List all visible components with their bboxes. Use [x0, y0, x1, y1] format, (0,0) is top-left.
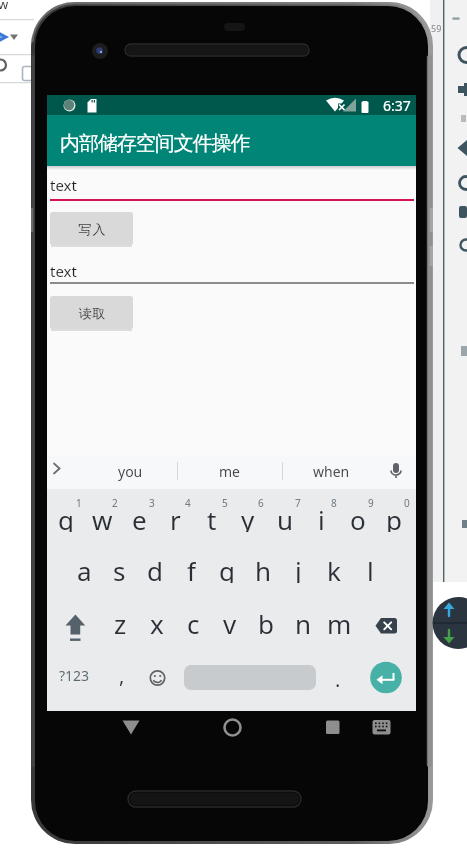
- staticText: .: [335, 666, 341, 692]
- staticText: g: [219, 553, 235, 583]
- staticText: l: [367, 553, 374, 583]
- staticText: t: [207, 502, 217, 532]
- staticText: 1: [76, 496, 82, 507]
- staticText: e: [132, 502, 147, 532]
- staticText: c: [187, 606, 200, 636]
- staticText: 读取: [78, 305, 106, 321]
- staticText: m: [327, 606, 352, 636]
- staticText: n: [295, 606, 312, 636]
- staticText: 7: [295, 496, 301, 507]
- staticText: u: [277, 502, 294, 532]
- staticText: 9: [368, 496, 374, 507]
- staticText: 内部储存空间文件操作: [60, 131, 250, 156]
- staticText: s: [113, 553, 126, 583]
- staticText: you: [118, 462, 143, 481]
- staticText: 3: [149, 496, 155, 507]
- staticText: 8: [331, 496, 337, 507]
- staticText: me: [219, 462, 240, 481]
- staticText: 6:37: [383, 96, 411, 115]
- staticText: d: [147, 553, 163, 583]
- staticText: ,: [119, 662, 125, 688]
- staticText: z: [114, 606, 127, 636]
- staticText: 0: [404, 496, 410, 507]
- staticText: 59: [431, 22, 442, 34]
- staticText: r: [170, 502, 181, 532]
- staticText: p: [386, 502, 402, 532]
- staticText: h: [255, 553, 272, 583]
- staticText: y: [241, 502, 255, 532]
- staticText: text: [50, 175, 77, 195]
- staticText: text: [50, 261, 77, 281]
- staticText: o: [350, 502, 366, 532]
- staticText: b: [258, 606, 274, 636]
- staticText: v: [223, 606, 237, 636]
- staticText: j: [295, 553, 302, 583]
- staticText: x: [150, 606, 164, 636]
- staticText: 写入: [78, 221, 106, 237]
- staticText: when: [313, 462, 350, 481]
- staticText: q: [58, 502, 74, 532]
- staticText: 2: [112, 496, 118, 507]
- staticText: 5: [222, 496, 228, 507]
- staticText: 4: [185, 496, 191, 507]
- staticText: f: [187, 553, 196, 583]
- staticText: ?123: [59, 666, 90, 685]
- staticText: a: [77, 553, 92, 583]
- staticText: i: [318, 502, 325, 532]
- staticText: k: [327, 553, 341, 583]
- staticText: w: [0, 0, 9, 13]
- staticText: 6: [258, 496, 264, 507]
- staticText: w: [92, 502, 113, 532]
